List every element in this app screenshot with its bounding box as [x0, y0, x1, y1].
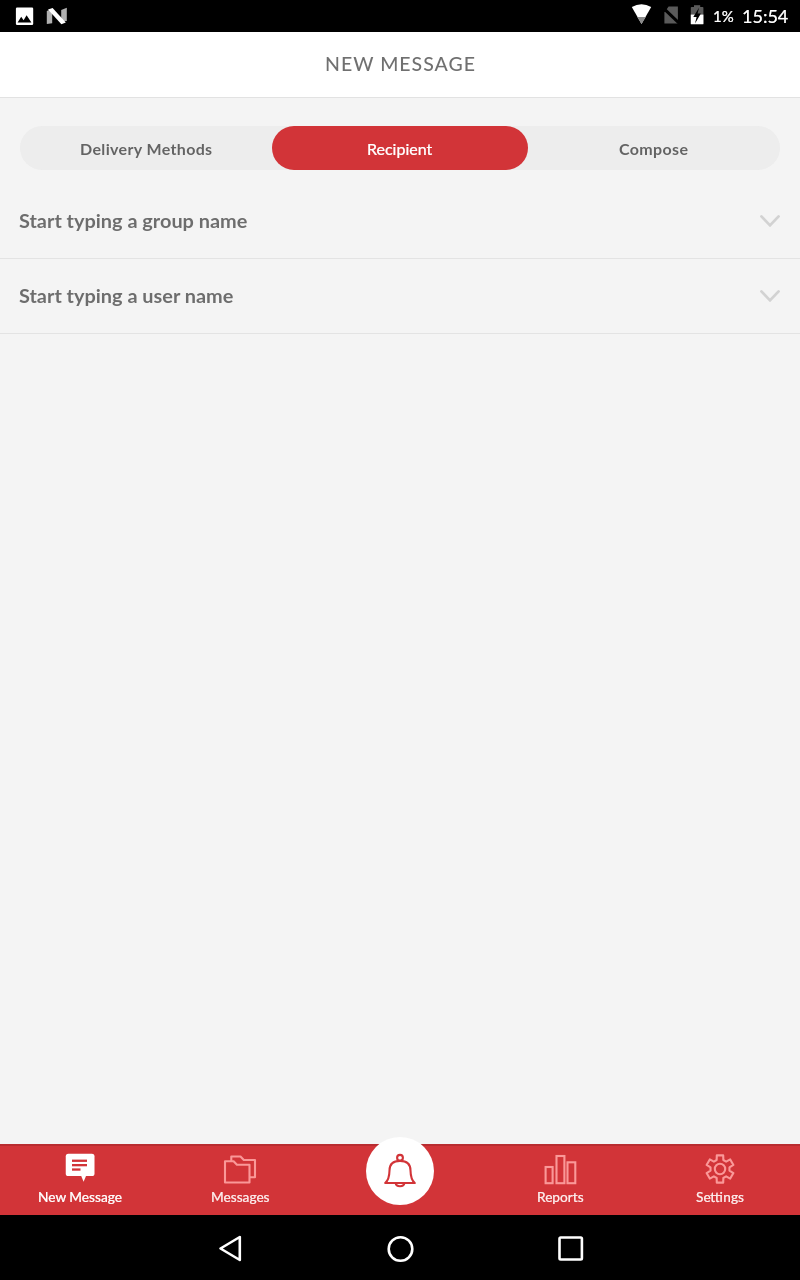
staticText: Start typing a user name [19, 283, 234, 307]
staticText: Compose [619, 139, 689, 158]
staticText: 1% [713, 7, 734, 25]
staticText: Settings [696, 1188, 744, 1204]
staticText: NEW MESSAGE [325, 52, 476, 75]
button[interactable]: Home [340, 1215, 460, 1280]
staticText: Messages [211, 1188, 270, 1204]
button[interactable]: Recipient [272, 126, 528, 170]
button[interactable]: Start typing a group name [0, 184, 800, 259]
button[interactable]: Back [170, 1215, 290, 1280]
staticText: Start typing a group name [19, 208, 248, 232]
button[interactable]: New Message [0, 1144, 160, 1215]
button[interactable]: Reports [480, 1144, 640, 1215]
button[interactable]: Recent apps [510, 1215, 630, 1280]
button[interactable]: Delivery Methods [20, 126, 272, 170]
staticText: Delivery Methods [80, 139, 213, 158]
staticText: Recipient [367, 139, 433, 158]
staticText: New Message [38, 1188, 122, 1204]
button[interactable]: Settings [640, 1144, 800, 1215]
button[interactable]: Messages [160, 1144, 320, 1215]
staticText: Reports [537, 1188, 584, 1204]
button[interactable]: Compose [528, 126, 780, 170]
staticText: 15:54 [742, 5, 789, 27]
button[interactable]: Notifications [366, 1137, 434, 1205]
button[interactable]: Start typing a user name [0, 259, 800, 334]
